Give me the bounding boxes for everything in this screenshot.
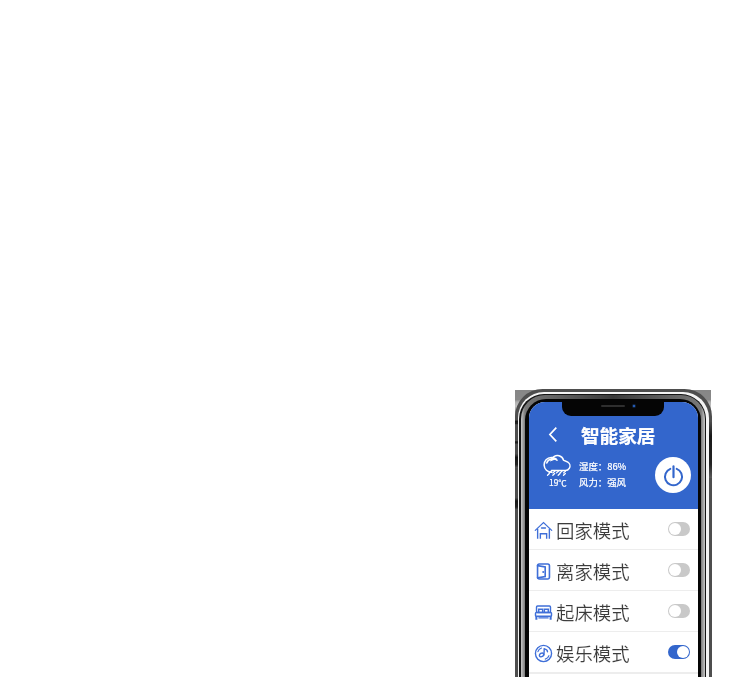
staticText: 风力：强风 [579, 475, 626, 489]
button[interactable]: 起床模式 [529, 591, 698, 631]
button[interactable]: Back [540, 421, 566, 447]
button[interactable]: Power [655, 457, 691, 493]
staticText: 回家模式 [556, 517, 630, 544]
button[interactable] [668, 522, 690, 536]
staticText: 19℃ [549, 476, 567, 488]
button[interactable]: 娱乐模式 [529, 632, 698, 672]
button[interactable] [668, 604, 690, 618]
button[interactable] [668, 563, 690, 577]
staticText: 离家模式 [556, 558, 630, 585]
button[interactable]: 回家模式 [529, 509, 698, 549]
staticText: 湿度：86% [579, 459, 627, 473]
staticText: 娱乐模式 [556, 640, 630, 667]
button[interactable] [668, 645, 690, 659]
staticText: 起床模式 [556, 599, 630, 626]
staticText: 智能家居 [581, 421, 656, 448]
button[interactable]: 离家模式 [529, 550, 698, 590]
